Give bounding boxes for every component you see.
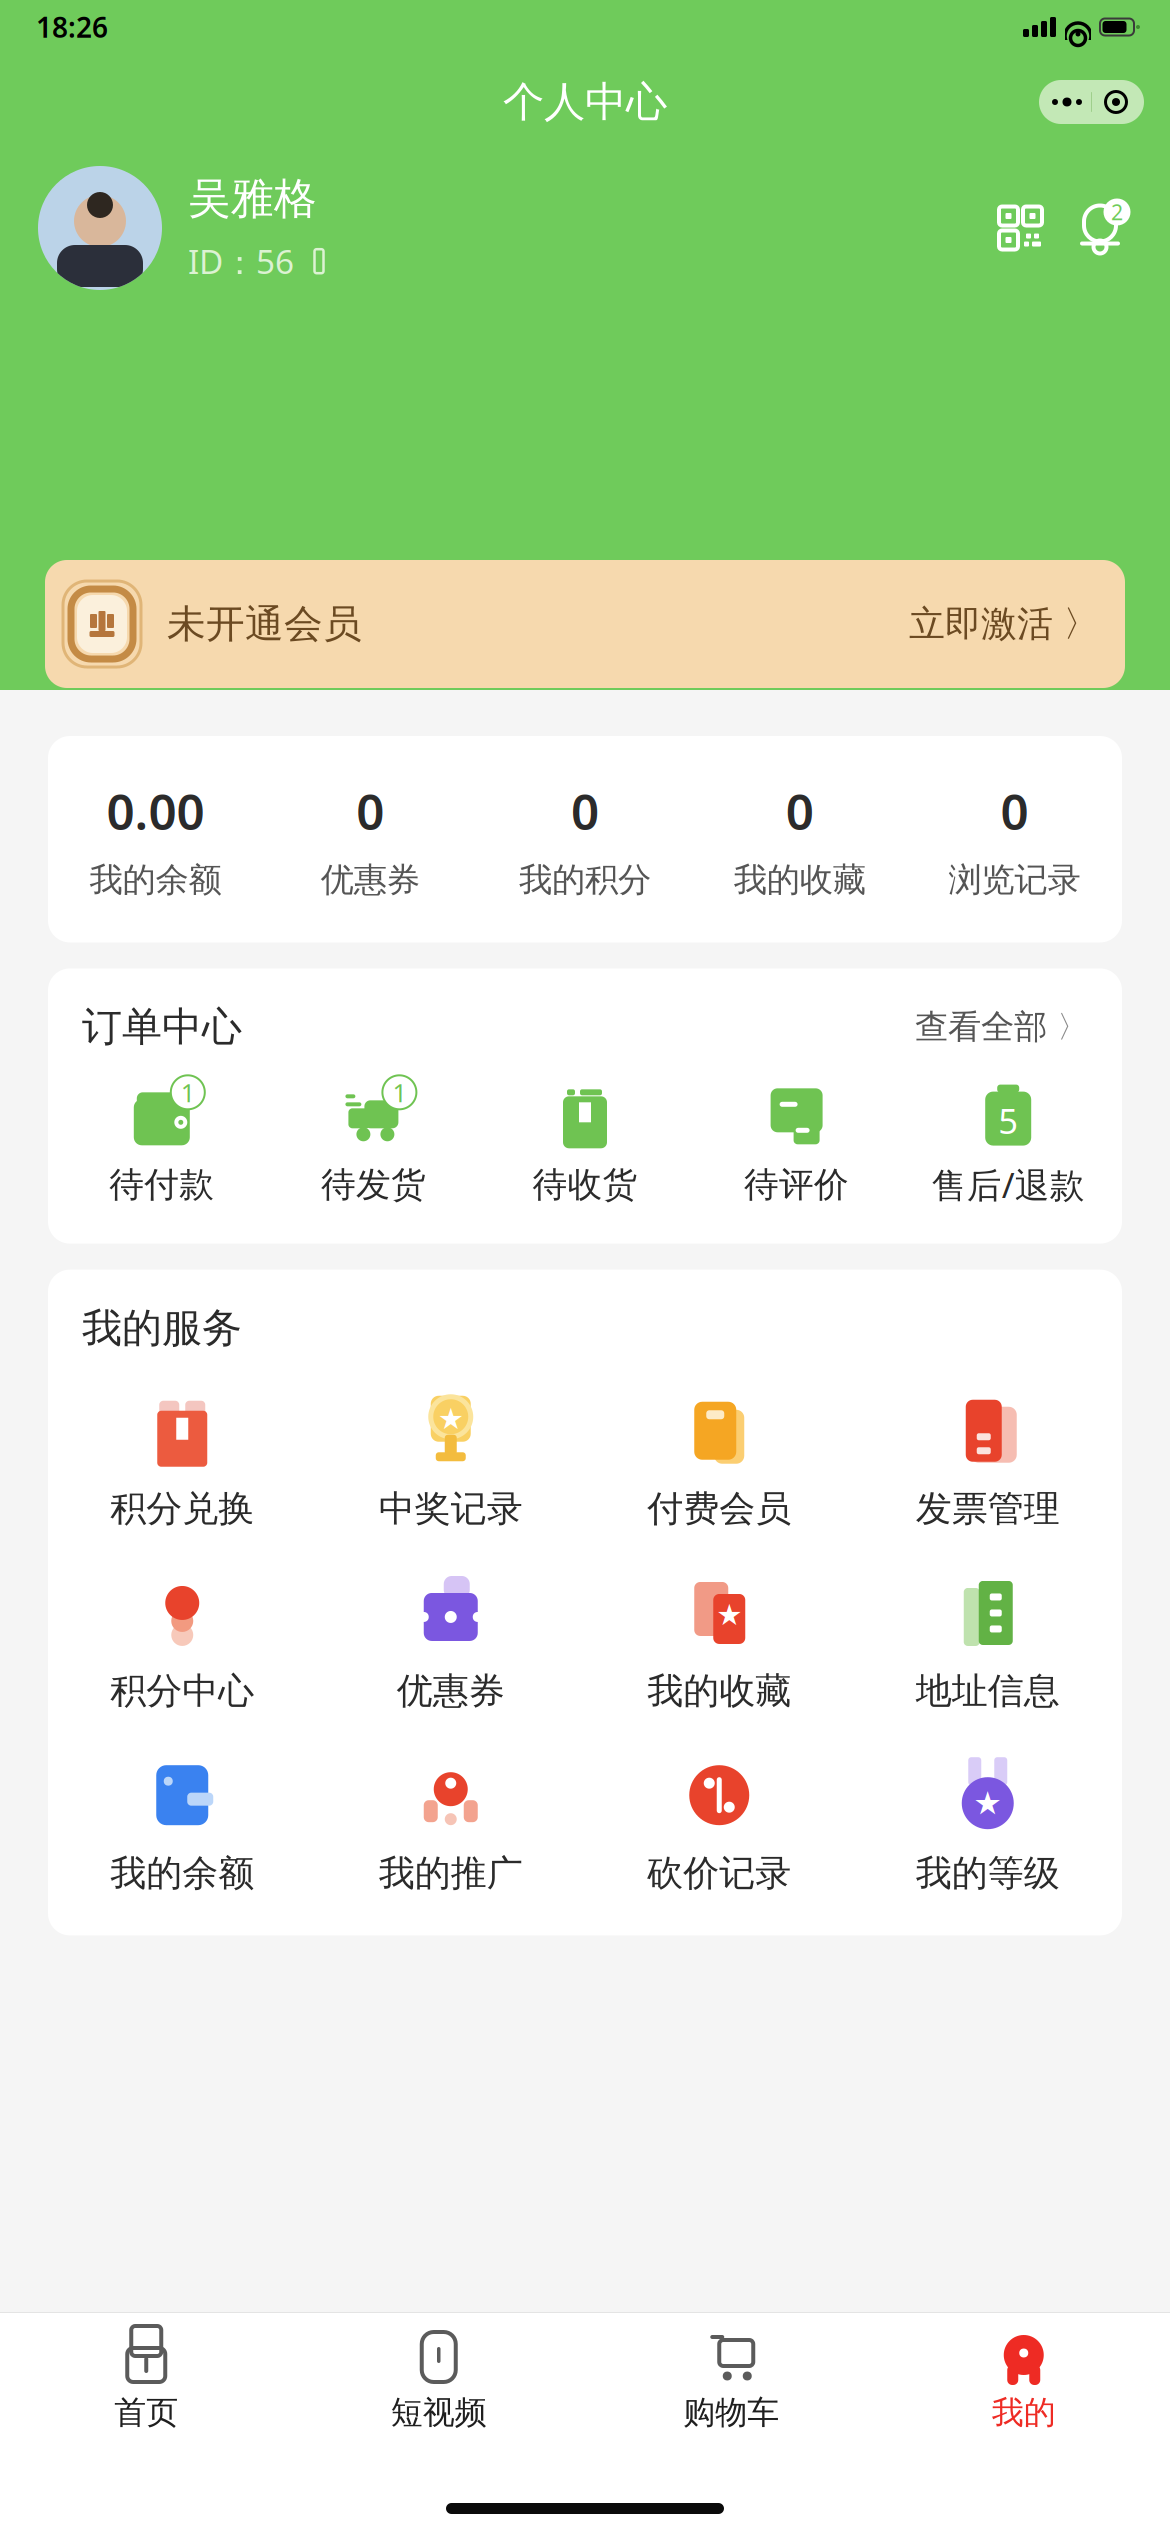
button[interactable]: ★	[316, 1393, 585, 1531]
staticText: 0.00	[106, 778, 204, 843]
staticText: 待发货	[321, 1163, 426, 1206]
staticText: 1	[181, 1075, 195, 1109]
staticText: 积分中心	[110, 1669, 254, 1713]
staticText: 立即激活	[909, 602, 1053, 646]
staticText: 售后/退款	[932, 1162, 1085, 1208]
staticText: 查看全部	[915, 1006, 1047, 1047]
staticText: 待收货	[532, 1163, 637, 1206]
staticText: 首页	[114, 2393, 178, 2432]
button[interactable]: More	[1043, 85, 1091, 119]
button[interactable]: 1	[56, 1083, 268, 1206]
button[interactable]: 优惠券	[316, 1575, 585, 1713]
staticText: 优惠券	[397, 1669, 505, 1713]
button[interactable]: ★	[853, 1757, 1122, 1895]
button[interactable]: 积分中心	[48, 1575, 316, 1713]
button[interactable]: 我的	[877, 2331, 1170, 2432]
staticText: 个人中心	[503, 77, 667, 127]
staticText: 我的余额	[110, 1851, 254, 1895]
staticText: 未开通会员	[167, 600, 362, 648]
staticText: 我的推广	[379, 1851, 523, 1895]
staticText: 订单中心	[82, 1002, 242, 1052]
staticText: 砍价记录	[647, 1851, 791, 1895]
staticText: 浏览记录	[949, 859, 1081, 900]
button[interactable]: 未开通会员	[45, 560, 1125, 688]
staticText: 购物车	[683, 2393, 779, 2432]
button[interactable]: 0.00	[48, 778, 263, 900]
staticText: ★	[438, 1402, 464, 1435]
button[interactable]: 待收货	[479, 1083, 691, 1206]
staticText: 短视频	[391, 2393, 487, 2432]
button[interactable]: Close	[1092, 85, 1140, 119]
staticText: 我的服务	[82, 1304, 242, 1353]
staticText: 0	[571, 778, 599, 843]
staticText: 付费会员	[647, 1487, 791, 1531]
button[interactable]: 1	[268, 1083, 479, 1206]
button[interactable]: 付费会员	[585, 1393, 853, 1531]
button[interactable]: 0	[263, 778, 478, 900]
staticText: 我的收藏	[734, 859, 866, 900]
staticText: 吴雅格	[188, 173, 317, 225]
staticText: 18:26	[36, 8, 108, 46]
staticText: 我的	[992, 2393, 1056, 2432]
staticText: 地址信息	[916, 1669, 1060, 1713]
staticText: 我的收藏	[647, 1669, 791, 1713]
button[interactable]: My QR code	[999, 206, 1042, 249]
button[interactable]: 查看全部	[915, 1006, 1088, 1047]
button[interactable]: 砍价记录	[585, 1757, 853, 1895]
button[interactable]: 待评价	[691, 1083, 902, 1206]
staticText: ID：56	[188, 239, 294, 283]
staticText: 〉	[1063, 602, 1099, 646]
staticText: 我的积分	[519, 859, 651, 900]
staticText: 发票管理	[916, 1487, 1060, 1531]
button[interactable]: 5	[902, 1082, 1114, 1208]
staticText: 我的余额	[89, 859, 221, 900]
button[interactable]: 积分兑换	[48, 1393, 316, 1531]
button[interactable]: 地址信息	[853, 1575, 1122, 1713]
button[interactable]: 0	[907, 778, 1122, 900]
button[interactable]: 我的推广	[316, 1757, 585, 1895]
button[interactable]: Edit nickname	[306, 247, 332, 275]
staticText: 我的等级	[916, 1851, 1060, 1895]
staticText: 中奖记录	[379, 1487, 523, 1531]
button[interactable]: 购物车	[585, 2331, 877, 2432]
staticText: ★	[973, 1785, 1002, 1821]
staticText: 〉	[1057, 1008, 1088, 1046]
button[interactable]: 发票管理	[853, 1393, 1122, 1531]
button[interactable]: ★	[585, 1575, 853, 1713]
button[interactable]: Notifications	[1076, 201, 1128, 255]
button[interactable]: 0	[478, 778, 692, 900]
staticText: 0	[356, 778, 384, 843]
staticText: 积分兑换	[110, 1487, 254, 1531]
button[interactable]: 首页	[0, 2331, 292, 2432]
staticText: 5	[998, 1098, 1018, 1144]
staticText: 待付款	[109, 1163, 214, 1206]
staticText: 待评价	[744, 1163, 849, 1206]
button[interactable]: 短视频	[292, 2331, 585, 2432]
staticText: 优惠券	[321, 859, 420, 900]
button[interactable]: 0	[692, 778, 907, 900]
staticText: 1	[392, 1075, 406, 1109]
button[interactable]: 我的余额	[48, 1757, 316, 1895]
staticText: ★	[716, 1598, 742, 1632]
staticText: 0	[786, 778, 814, 843]
staticText: 2	[1111, 198, 1123, 226]
staticText: 0	[1001, 778, 1029, 843]
